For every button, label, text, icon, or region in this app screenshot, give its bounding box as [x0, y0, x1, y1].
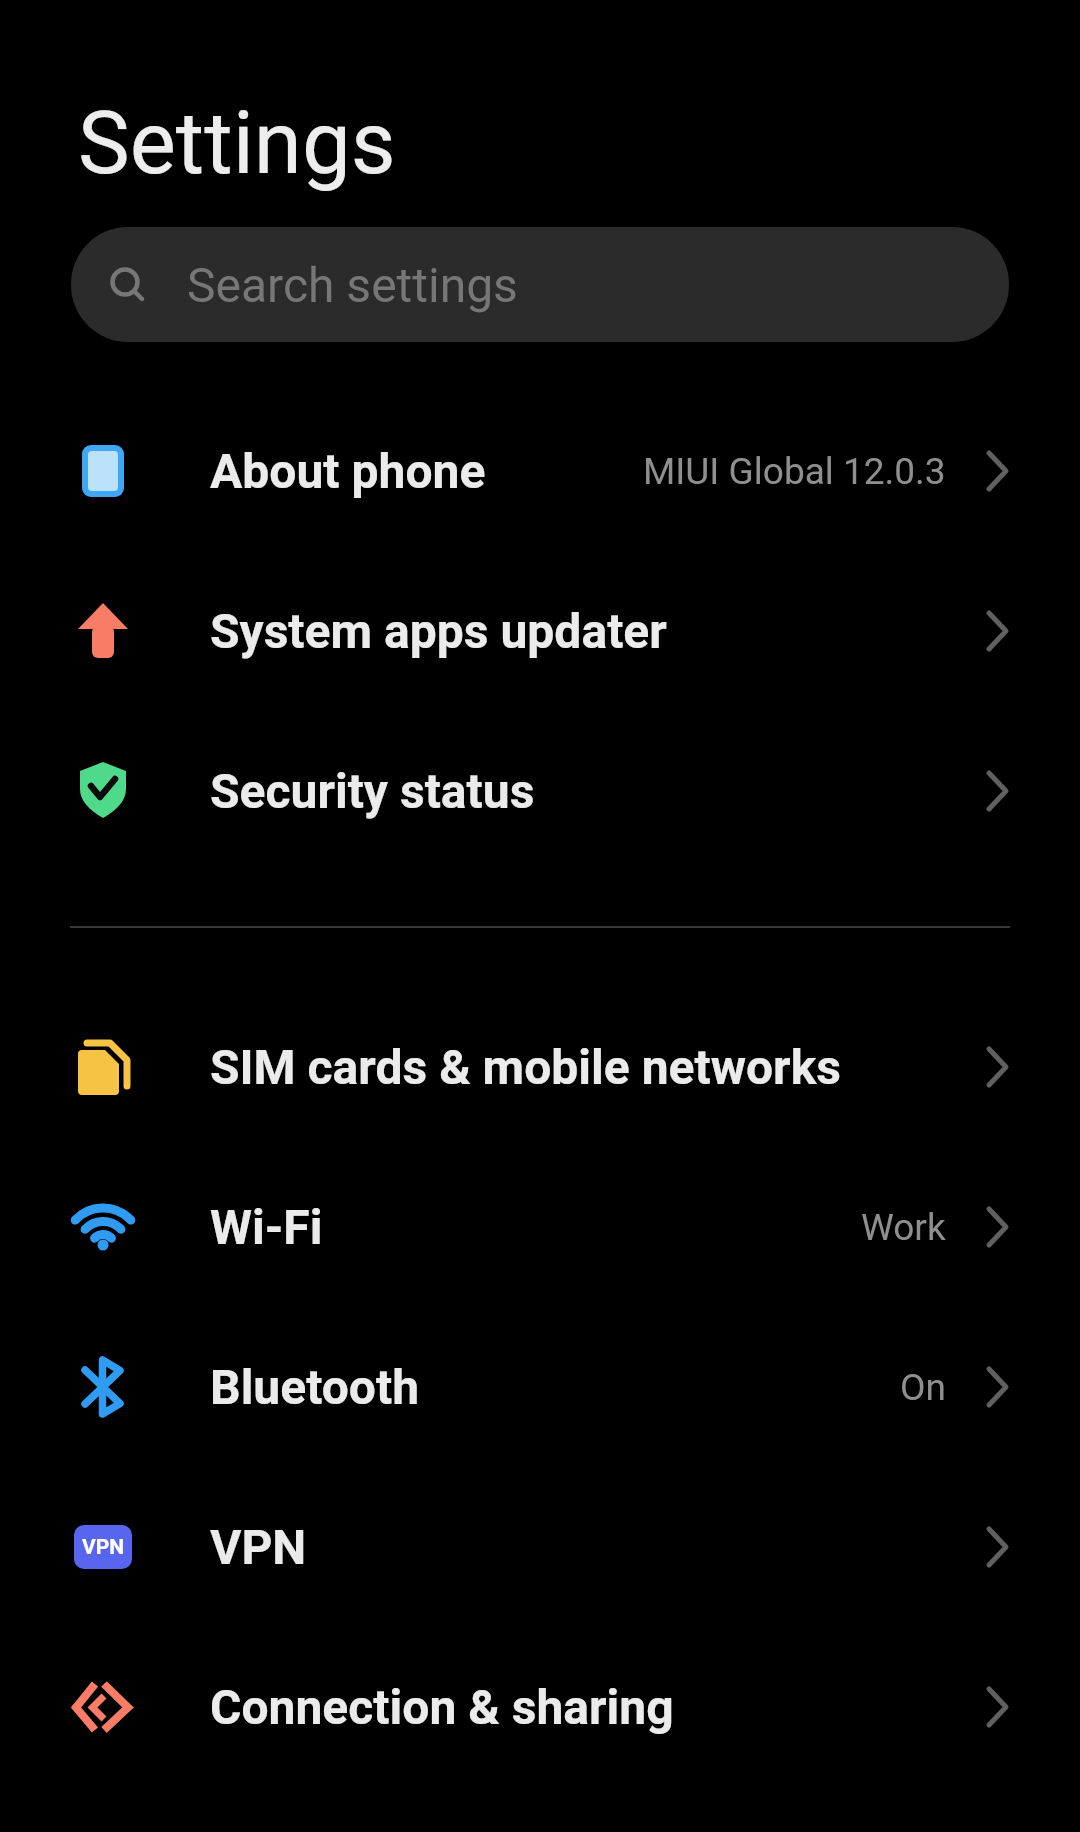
- staticText: Work: [861, 1206, 946, 1249]
- staticText: Security status: [210, 763, 535, 819]
- staticText: MIUI Global 12.0.3: [643, 450, 946, 493]
- button[interactable]: Security status: [0, 711, 1080, 871]
- button[interactable]: Bluetooth: [0, 1307, 1080, 1467]
- staticText: About phone: [210, 443, 486, 499]
- staticText: SIM cards & mobile networks: [210, 1039, 841, 1095]
- button[interactable]: SIM cards & mobile networks: [0, 987, 1080, 1147]
- staticText: Connection & sharing: [210, 1679, 674, 1735]
- staticText: Search settings: [187, 257, 518, 313]
- staticText: VPN: [210, 1519, 307, 1575]
- staticText: On: [900, 1366, 946, 1409]
- staticText: Wi-Fi: [210, 1199, 323, 1255]
- button[interactable]: System apps updater: [0, 551, 1080, 711]
- button[interactable]: Search settings: [71, 227, 1009, 342]
- staticText: Settings: [78, 92, 396, 194]
- button[interactable]: Connection & sharing: [0, 1627, 1080, 1787]
- staticText: Bluetooth: [210, 1359, 420, 1415]
- button[interactable]: VPN: [0, 1467, 1080, 1627]
- button[interactable]: Wi-Fi: [0, 1147, 1080, 1307]
- staticText: VPN: [82, 1535, 125, 1560]
- staticText: System apps updater: [210, 603, 667, 659]
- button[interactable]: About phone: [0, 391, 1080, 551]
